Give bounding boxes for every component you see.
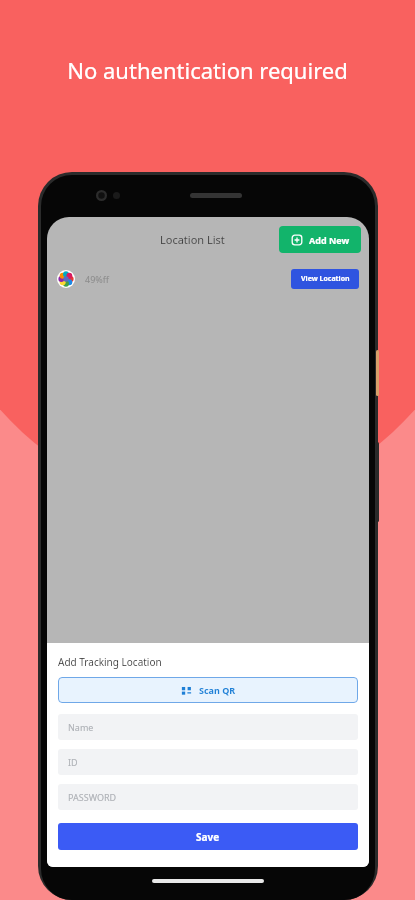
staticText: Add Tracking Location xyxy=(58,655,162,669)
staticText: View Location xyxy=(301,274,350,284)
button[interactable]: Save xyxy=(58,823,358,850)
staticText: Location List xyxy=(160,232,225,247)
button[interactable]: Name xyxy=(58,714,358,740)
staticText: PASSWORD xyxy=(68,791,117,803)
staticText: Add New xyxy=(309,234,350,246)
button[interactable]: PASSWORD xyxy=(58,784,358,810)
staticText: No authentication required xyxy=(67,55,348,85)
staticText: Save xyxy=(196,830,220,844)
button[interactable]: View Location xyxy=(291,269,359,289)
button[interactable]: Scan QR xyxy=(58,677,358,703)
button[interactable]: ID xyxy=(58,749,358,775)
staticText: Name xyxy=(68,721,94,733)
button[interactable]: Add New xyxy=(279,226,361,253)
button[interactable]: 49%ff xyxy=(47,261,369,297)
staticText: Scan QR xyxy=(199,684,236,696)
staticText: 49%ff xyxy=(85,273,109,285)
staticText: ID xyxy=(68,756,78,768)
